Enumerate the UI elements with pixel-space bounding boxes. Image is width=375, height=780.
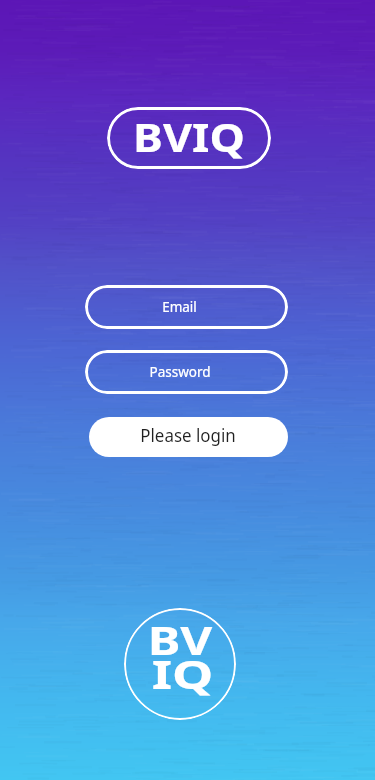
staticText: IQ <box>151 647 214 700</box>
button[interactable]: Password <box>85 350 288 394</box>
button[interactable]: BVIQ <box>107 107 271 169</box>
staticText: BVIQ <box>133 109 245 163</box>
other: BVIQ logo <box>124 608 236 720</box>
staticText: Email <box>162 298 197 316</box>
button[interactable]: Please login <box>89 417 288 457</box>
button[interactable]: Email <box>85 285 288 329</box>
staticText: Password <box>149 363 211 381</box>
staticText: BV <box>147 613 213 666</box>
staticText: Please login <box>140 423 236 448</box>
